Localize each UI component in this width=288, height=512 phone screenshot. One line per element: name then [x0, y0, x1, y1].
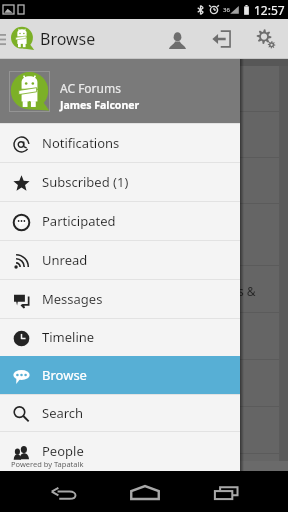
staticText: 12:57 [254, 2, 285, 18]
staticText: s & [238, 283, 256, 299]
staticText: Notifications [42, 134, 120, 152]
button[interactable]: Search [0, 394, 240, 431]
button[interactable]: Subscribed (1) [0, 162, 240, 201]
button[interactable]: Log out [200, 19, 242, 59]
staticText: AC Forums [60, 80, 121, 96]
staticText: Unread [42, 251, 88, 269]
staticText: Powered by Tapatalk [11, 459, 84, 469]
button[interactable]: Participated [0, 201, 240, 240]
staticText: Browse [42, 366, 87, 384]
button[interactable]: Browse [0, 356, 240, 394]
button[interactable]: Notifications [0, 123, 240, 162]
button[interactable]: AC Forums [0, 59, 240, 123]
staticText: Timeline [42, 328, 95, 346]
staticText: Participated [42, 212, 116, 230]
staticText: People [42, 442, 84, 460]
button[interactable]: Back [41, 471, 87, 512]
staticText: Messages [42, 290, 103, 308]
button[interactable]: Unread [0, 240, 240, 279]
button[interactable]: Timeline [0, 318, 240, 356]
button[interactable]: People [0, 431, 240, 471]
button[interactable]: Open navigation drawer [0, 19, 8, 59]
button[interactable]: Settings [244, 19, 286, 59]
staticText: James Falconer [60, 98, 140, 112]
button[interactable]: Home [122, 471, 168, 512]
staticText: 36 [223, 6, 230, 14]
staticText: Subscribed (1) [42, 173, 129, 191]
staticText: Search [42, 404, 84, 422]
staticText: Browse [40, 28, 96, 50]
button[interactable]: Messages [0, 279, 240, 318]
button[interactable]: Recent apps [203, 471, 249, 512]
button[interactable]: Profile [157, 19, 197, 59]
